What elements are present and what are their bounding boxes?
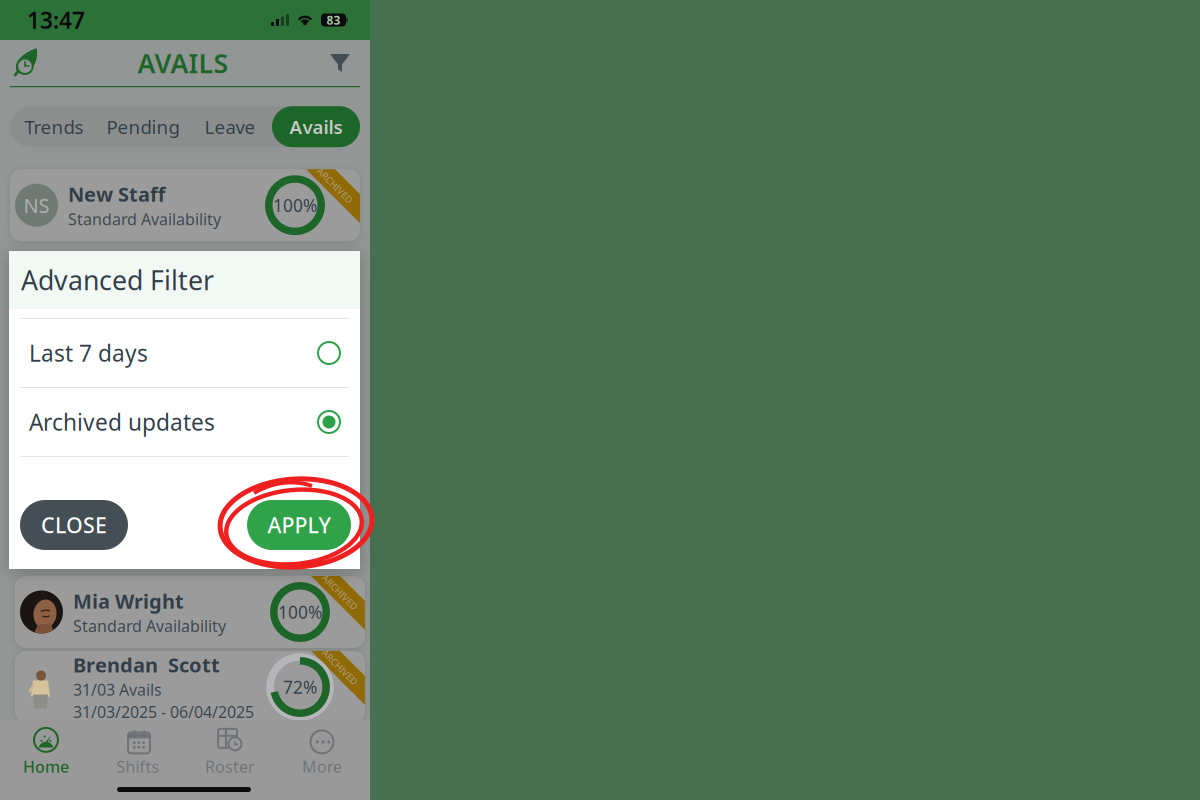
staticText: Leave — [204, 114, 255, 139]
staticText: More — [302, 756, 342, 777]
staticText: 13:47 — [27, 5, 85, 35]
staticText: 83 — [326, 12, 340, 28]
button[interactable]: ARCHIVED — [5, 651, 365, 723]
button[interactable]: ARCHIVED — [0, 169, 360, 241]
staticText: Standard Availability — [73, 615, 226, 636]
button[interactable]: Pending — [98, 106, 188, 147]
button[interactable]: Home — [0, 728, 92, 776]
button[interactable]: Leave — [188, 106, 272, 147]
staticText: ARCHIVED — [312, 179, 358, 192]
staticText: ARCHIVED — [317, 586, 363, 598]
button[interactable]: Last 7 days — [9, 319, 360, 387]
button[interactable]: CLOSE — [20, 500, 128, 550]
staticText: 100% — [273, 194, 317, 217]
staticText: 31/03 Avails — [73, 679, 162, 700]
button[interactable]: Trends — [10, 106, 98, 147]
staticText: Pending — [106, 114, 179, 139]
button[interactable]: Archived updates — [9, 388, 360, 456]
button[interactable]: Roster — [184, 728, 276, 776]
button[interactable]: APPLY — [247, 500, 351, 550]
staticText: Avails — [289, 114, 342, 139]
button[interactable]: Filter — [322, 45, 358, 81]
staticText: Standard Availability — [68, 208, 221, 230]
staticText: Home — [23, 756, 69, 777]
staticText: New Staff — [68, 181, 165, 207]
staticText: Archived updates — [29, 407, 215, 437]
button[interactable]: More — [276, 728, 368, 776]
staticText: 100% — [278, 600, 322, 623]
staticText: Advanced Filter — [21, 262, 214, 298]
button[interactable]: Home — [8, 45, 44, 81]
button[interactable]: Avails — [272, 106, 360, 147]
button[interactable]: ARCHIVED — [5, 576, 365, 648]
staticText: Brendan Scott — [73, 651, 220, 678]
staticText: 72% — [283, 675, 317, 698]
staticText: Last 7 days — [29, 338, 148, 368]
staticText: CLOSE — [41, 511, 107, 539]
staticText: AVAILS — [137, 45, 228, 81]
staticText: 31/03/2025 - 06/04/2025 — [73, 701, 254, 722]
staticText: APPLY — [267, 511, 330, 539]
staticText: Mia Wright — [73, 588, 184, 614]
button[interactable]: Shifts — [92, 728, 184, 776]
staticText: NS — [23, 192, 49, 218]
staticText: Roster — [205, 756, 255, 777]
staticText: Trends — [24, 114, 83, 139]
staticText: Shifts — [116, 756, 159, 777]
staticText: ARCHIVED — [317, 661, 363, 673]
